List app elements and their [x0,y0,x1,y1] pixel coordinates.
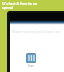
staticText: Whatever you need, get it done in a tap [12,30,60,34]
staticText: Scan [28,64,34,68]
button[interactable]: Scan [26,53,36,63]
staticText: spend [2,5,13,10]
staticText: It's fast & free to us [2,1,38,6]
